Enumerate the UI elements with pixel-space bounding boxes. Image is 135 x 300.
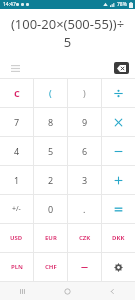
button[interactable]: Home	[45, 282, 90, 300]
button[interactable]: C	[0, 79, 33, 107]
button[interactable]: DKK	[102, 224, 135, 252]
staticText: +/-	[12, 204, 21, 214]
button[interactable]: CZK	[68, 224, 101, 252]
staticText: .	[83, 203, 86, 215]
button[interactable]: USD	[0, 224, 33, 252]
staticText: 8	[48, 116, 54, 128]
staticText: 9	[82, 116, 88, 128]
staticText: C	[14, 87, 20, 99]
button[interactable]: More	[68, 253, 101, 281]
staticText: DKK	[112, 234, 125, 242]
staticText: 78%	[117, 1, 127, 8]
button[interactable]: Subtract	[102, 137, 135, 165]
staticText: 4	[14, 145, 20, 157]
staticText: CZK	[79, 234, 91, 242]
button[interactable]: 2	[34, 166, 67, 194]
button[interactable]: Add	[102, 166, 135, 194]
staticText: 14:47	[3, 1, 16, 8]
button[interactable]: Equals	[102, 195, 135, 223]
button[interactable]: Multiply	[102, 108, 135, 136]
button[interactable]: 4	[0, 137, 33, 165]
button[interactable]: )	[68, 79, 101, 107]
staticText: USD	[10, 234, 23, 242]
button[interactable]: Recents	[0, 282, 45, 300]
staticText: )	[83, 87, 86, 99]
staticText: 1	[14, 174, 20, 186]
button[interactable]: 7	[0, 108, 33, 136]
button[interactable]: .	[68, 195, 101, 223]
staticText: 5	[48, 145, 54, 157]
button[interactable]: (	[34, 79, 67, 107]
staticText: 6	[82, 145, 88, 157]
staticText: 3	[82, 174, 88, 186]
button[interactable]: 9	[68, 108, 101, 136]
button[interactable]: Back	[90, 282, 135, 300]
button[interactable]: PLN	[0, 253, 33, 281]
button[interactable]: 6	[68, 137, 101, 165]
staticText: 7	[14, 116, 20, 128]
button[interactable]: CHF	[34, 253, 67, 281]
button[interactable]: +/-	[0, 195, 33, 223]
staticText: (	[49, 87, 52, 99]
button[interactable]: 8	[34, 108, 67, 136]
staticText: CHF	[45, 263, 57, 271]
button[interactable]: EUR	[34, 224, 67, 252]
button[interactable]: Backspace	[114, 62, 129, 74]
button[interactable]: Divide	[102, 79, 135, 107]
button[interactable]: Settings	[102, 253, 135, 281]
button[interactable]: Menu	[8, 61, 22, 75]
staticText: 2	[48, 174, 54, 186]
staticText: EUR	[45, 234, 57, 242]
button[interactable]: 3	[68, 166, 101, 194]
staticText: (100-20×(500-55))÷5	[8, 15, 127, 51]
button[interactable]: 0	[34, 195, 67, 223]
staticText: PLN	[11, 263, 23, 271]
button[interactable]: 5	[34, 137, 67, 165]
staticText: 0	[48, 203, 54, 215]
button[interactable]: 1	[0, 166, 33, 194]
